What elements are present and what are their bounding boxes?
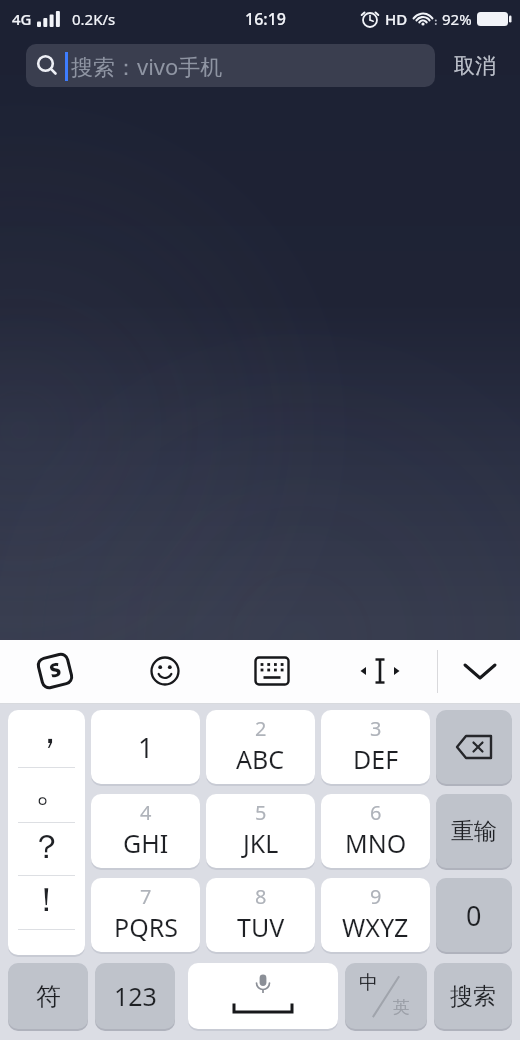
- button[interactable]: 123: [95, 963, 175, 1029]
- staticText: 。: [35, 766, 71, 811]
- button[interactable]: 6: [321, 794, 430, 868]
- button[interactable]: 搜索：vivo手机: [26, 44, 435, 87]
- button[interactable]: S: [33, 649, 77, 693]
- staticText: 9: [370, 883, 382, 910]
- button[interactable]: [458, 649, 502, 693]
- staticText: TUV: [237, 910, 285, 944]
- button[interactable]: 3: [321, 710, 430, 784]
- staticText: 4G: [12, 9, 32, 29]
- staticText: 搜索：vivo手机: [71, 51, 223, 81]
- button[interactable]: ！: [8, 875, 85, 929]
- staticText: 3: [370, 715, 382, 742]
- button[interactable]: [143, 649, 187, 693]
- staticText: ？: [30, 826, 63, 868]
- button[interactable]: 9: [321, 878, 430, 952]
- button[interactable]: [188, 963, 338, 1029]
- staticText: 1: [138, 729, 154, 766]
- staticText: 0.2K/s: [72, 9, 116, 29]
- staticText: S: [47, 656, 64, 684]
- button[interactable]: 中: [345, 963, 427, 1029]
- button[interactable]: 重输: [436, 794, 512, 868]
- button[interactable]: 7: [91, 878, 200, 952]
- button[interactable]: [436, 710, 512, 784]
- button[interactable]: [250, 649, 294, 693]
- staticText: 中: [359, 971, 378, 995]
- staticText: ，: [32, 710, 68, 753]
- staticText: DEF: [353, 742, 399, 776]
- staticText: 符: [36, 981, 61, 1012]
- button[interactable]: 1: [91, 710, 200, 784]
- staticText: PQRS: [114, 910, 178, 944]
- staticText: 16:19: [245, 8, 286, 30]
- staticText: ！: [30, 879, 63, 921]
- staticText: 英: [393, 997, 410, 1018]
- button[interactable]: 取消: [429, 44, 520, 87]
- staticText: ABC: [236, 742, 285, 776]
- staticText: 2: [255, 715, 267, 742]
- staticText: GHI: [123, 826, 169, 860]
- button[interactable]: 符: [8, 963, 88, 1029]
- button[interactable]: ？: [8, 822, 85, 875]
- staticText: JKL: [243, 826, 279, 860]
- button[interactable]: 搜索: [434, 963, 512, 1029]
- staticText: 0: [466, 897, 482, 934]
- staticText: 92%: [442, 9, 472, 29]
- staticText: 7: [140, 883, 152, 910]
- staticText: 5: [255, 799, 267, 826]
- staticText: MNO: [345, 826, 407, 860]
- button[interactable]: 8: [206, 878, 315, 952]
- button[interactable]: 2: [206, 710, 315, 784]
- staticText: 搜索: [450, 982, 496, 1011]
- button[interactable]: 4: [91, 794, 200, 868]
- staticText: 123: [114, 979, 157, 1013]
- staticText: 8: [255, 883, 267, 910]
- staticText: 4: [140, 799, 152, 826]
- button[interactable]: 。: [8, 767, 85, 822]
- staticText: 6: [370, 799, 382, 826]
- button[interactable]: [358, 649, 402, 693]
- staticText: 重输: [451, 817, 497, 846]
- button[interactable]: 5: [206, 794, 315, 868]
- staticText: HD: [385, 9, 408, 29]
- staticText: 取消: [454, 53, 496, 79]
- staticText: WXYZ: [342, 910, 409, 944]
- button[interactable]: 0: [436, 878, 512, 952]
- button[interactable]: ，: [8, 710, 85, 767]
